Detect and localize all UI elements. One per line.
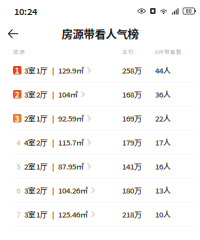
button[interactable]: 4 [0,130,200,154]
staticText: 60 [186,7,192,14]
staticText: 17人 [155,137,171,148]
staticText: 3室2厅 | 104㎡ [24,89,78,100]
staticText: 10人 [155,209,171,220]
staticText: 141万 [122,161,142,172]
button[interactable]: 7 [0,202,200,226]
staticText: 1 [15,64,20,76]
staticText: 179万 [122,137,142,148]
staticText: 总价 [122,48,134,56]
button[interactable]: 返回 [0,22,26,44]
button[interactable]: 1 [0,58,200,82]
staticText: 180万 [122,185,142,196]
staticText: 13人 [155,185,171,196]
staticText: 218万 [122,209,142,220]
staticText: 168万 [122,89,142,100]
staticText: 36人 [155,89,171,100]
staticText: 3室1厅 | 129.9㎡ [24,65,84,76]
staticText: 7 [16,209,20,219]
staticText: 4 [16,137,20,147]
staticText: 258万 [122,65,142,76]
button[interactable]: 2 [0,82,200,106]
staticText: 22人 [155,113,171,124]
staticText: 房源 [13,48,25,56]
staticText: 房源带看人气榜 [61,25,138,42]
staticText: 2 [15,88,20,100]
staticText: 3 [15,112,20,124]
staticText: 6月带看数 [155,48,182,56]
staticText: 6 [16,185,20,195]
button[interactable]: 5 [0,154,200,178]
staticText: 10:24 [14,4,37,18]
staticText: 3室1厅 | 125.46㎡ [24,209,88,220]
staticText: 169万 [122,113,142,124]
staticText: 16人 [155,161,171,172]
staticText: 2室1厅 | 87.95㎡ [24,161,84,172]
staticText: 44人 [155,65,171,76]
button[interactable]: 3 [0,106,200,130]
staticText: 2室1厅 | 92.59㎡ [24,113,84,124]
staticText: 3室2厅 | 104.26㎡ [24,185,88,196]
staticText: 5 [16,161,20,171]
button[interactable]: 6 [0,178,200,202]
staticText: 4室2厅 | 115.7㎡ [24,137,84,148]
